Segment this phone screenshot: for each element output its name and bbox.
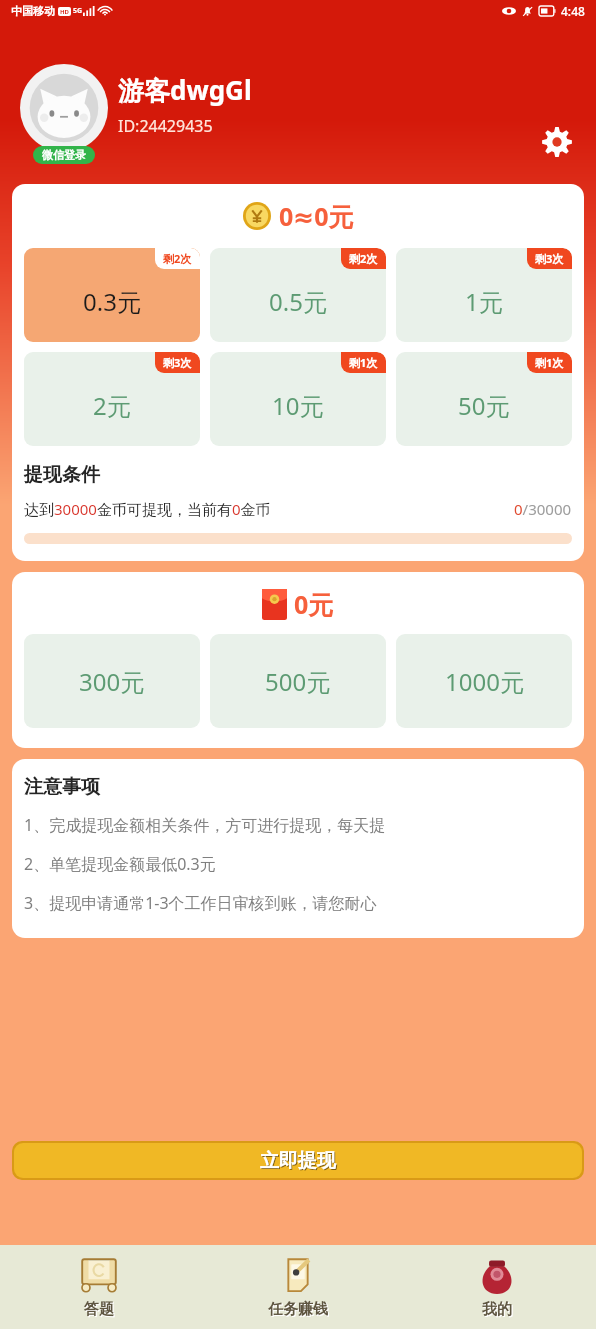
staticText: 2、单笔提现金额最低0.3元 bbox=[24, 853, 216, 875]
button[interactable]: 剩3次 bbox=[24, 352, 200, 446]
staticText: 0.3元 bbox=[83, 285, 141, 318]
staticText: 中国移动 bbox=[11, 4, 55, 18]
staticText: 我的 bbox=[482, 1300, 512, 1319]
staticText: 10元 bbox=[272, 389, 324, 422]
staticText: 4:48 bbox=[561, 3, 585, 19]
staticText: 剩3次 bbox=[535, 251, 564, 266]
staticText: 1元 bbox=[465, 285, 503, 318]
staticText: 注意事项 bbox=[24, 775, 100, 799]
button[interactable]: 任务赚钱 bbox=[198, 1245, 397, 1329]
staticText: 剩1次 bbox=[535, 355, 564, 370]
staticText: 2元 bbox=[93, 389, 131, 422]
button[interactable]: 剩1次 bbox=[210, 352, 386, 446]
staticText: 剩3次 bbox=[163, 355, 192, 370]
staticText: 3、提现申请通常1-3个工作日审核到账，请您耐心 bbox=[24, 892, 377, 914]
staticText: 任务赚钱 bbox=[268, 1300, 328, 1319]
staticText: 50元 bbox=[458, 389, 510, 422]
staticText: HD bbox=[60, 8, 69, 16]
staticText: 我的 bbox=[483, 1301, 513, 1320]
button[interactable]: 300元 bbox=[24, 634, 200, 728]
button[interactable]: 立即提现 bbox=[14, 1143, 582, 1178]
button[interactable]: 500元 bbox=[210, 634, 386, 728]
staticText: 答题 bbox=[85, 1301, 115, 1320]
staticText: 500元 bbox=[265, 665, 331, 698]
staticText: 0/30000 bbox=[514, 499, 572, 519]
staticText: 0.5元 bbox=[269, 285, 327, 318]
staticText: 立即提现 bbox=[260, 1149, 336, 1173]
button[interactable]: 剩1次 bbox=[396, 352, 572, 446]
staticText: 1、完成提现金额相关条件，方可进行提现，每天提 bbox=[24, 814, 386, 836]
staticText: 5G bbox=[73, 6, 83, 16]
staticText: 微信登录 bbox=[42, 148, 86, 162]
button[interactable]: 1000元 bbox=[396, 634, 572, 728]
staticText: 0≈0元 bbox=[279, 199, 354, 233]
staticText: 游客dwgGl bbox=[118, 72, 252, 108]
button[interactable]: Settings bbox=[540, 125, 574, 159]
button[interactable]: 我的 bbox=[397, 1245, 596, 1329]
button[interactable]: 答题 bbox=[0, 1245, 198, 1329]
staticText: 0元 bbox=[294, 587, 334, 621]
staticText: ID:24429435 bbox=[118, 115, 213, 137]
staticText: 达到30000金币可提现，当前有0金币 bbox=[24, 499, 271, 519]
staticText: 剩2次 bbox=[349, 251, 378, 266]
button[interactable]: 剩2次 bbox=[24, 248, 200, 342]
staticText: 立即提现 bbox=[261, 1150, 337, 1174]
button[interactable]: 剩2次 bbox=[210, 248, 386, 342]
staticText: 提现条件 bbox=[24, 463, 100, 487]
staticText: 1000元 bbox=[445, 665, 524, 698]
button[interactable]: 微信登录 bbox=[42, 148, 86, 162]
staticText: 剩2次 bbox=[163, 251, 192, 266]
staticText: 任务赚钱 bbox=[269, 1301, 329, 1320]
staticText: 答题 bbox=[84, 1300, 114, 1319]
staticText: 剩1次 bbox=[349, 355, 378, 370]
staticText: 300元 bbox=[79, 665, 145, 698]
button[interactable]: 剩3次 bbox=[396, 248, 572, 342]
